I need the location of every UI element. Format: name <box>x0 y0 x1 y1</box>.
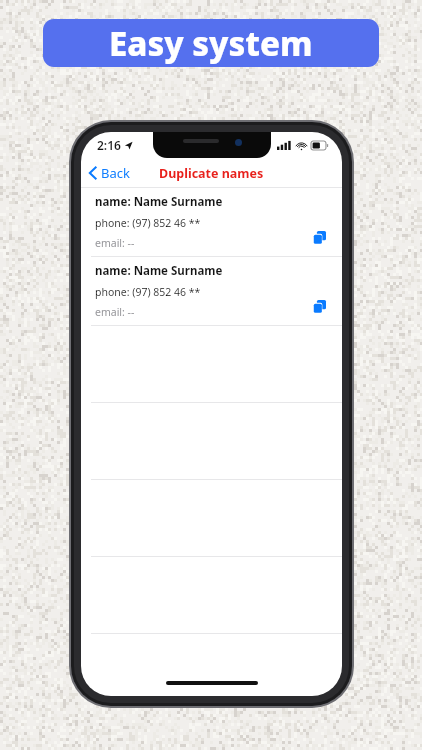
button[interactable]: Easy system <box>43 19 379 67</box>
staticText: 2:16 <box>97 137 121 153</box>
staticText: name: Name Surname <box>95 263 223 279</box>
staticText: Duplicate names <box>159 165 264 182</box>
staticText: phone: (97) 852 46 ** <box>95 216 201 230</box>
button[interactable]: name: Name Surname <box>81 257 342 325</box>
staticText: email: -- <box>95 236 135 250</box>
staticText: email: -- <box>95 305 135 319</box>
staticText: Back <box>101 164 130 182</box>
button[interactable]: Copy contact <box>308 295 330 317</box>
button[interactable]: Copy contact <box>308 226 330 248</box>
button[interactable]: Back <box>81 158 138 188</box>
button[interactable]: name: Name Surname <box>81 188 342 256</box>
staticText: name: Name Surname <box>95 194 223 210</box>
staticText: phone: (97) 852 46 ** <box>95 285 201 299</box>
staticText: Easy system <box>109 21 313 66</box>
